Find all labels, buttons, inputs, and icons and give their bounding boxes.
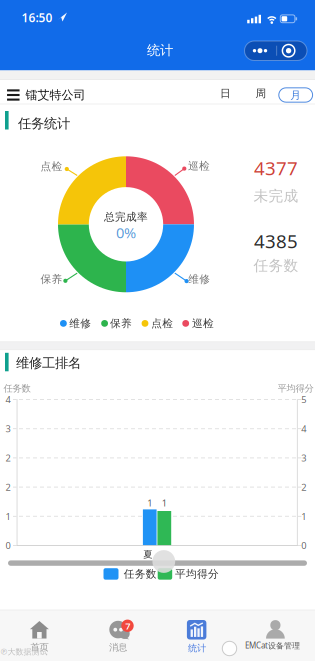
staticText: 任务数 — [124, 567, 157, 580]
button[interactable]: 日 — [213, 84, 237, 102]
staticText: ℗大数据测试 — [0, 646, 47, 657]
staticText: 点检 — [40, 160, 62, 173]
staticText: 总完成率 — [104, 210, 148, 223]
staticText: 3 — [301, 452, 306, 464]
staticText: 巡检 — [192, 317, 214, 330]
staticText: 维修 — [188, 273, 210, 286]
staticText: 1 — [162, 497, 167, 509]
staticText: 7 — [125, 620, 130, 632]
staticText: 16:50 — [21, 9, 52, 25]
button[interactable]: 月 — [278, 87, 313, 103]
staticText: 0% — [116, 223, 136, 242]
staticText: 维修工排名 — [16, 355, 81, 371]
staticText: EMCat设备管理 — [245, 640, 300, 651]
button[interactable]: 首页 — [4, 615, 74, 659]
button[interactable]: Close — [280, 41, 304, 60]
staticText: 4 — [301, 422, 306, 435]
staticText: 平均得分 — [277, 383, 313, 394]
staticText: 日 — [220, 87, 231, 100]
staticText: 首页 — [30, 641, 48, 653]
button[interactable]: 统计 — [162, 615, 232, 659]
button[interactable]: More — [245, 41, 276, 60]
staticText: 3 — [5, 422, 10, 435]
staticText: 月 — [290, 89, 301, 102]
staticText: 巡检 — [188, 159, 210, 172]
staticText: 夏 — [143, 549, 152, 560]
staticText: 统计 — [147, 42, 173, 58]
staticText: 1 — [301, 510, 306, 522]
staticText: 周 — [255, 87, 266, 100]
staticText: 4377 — [254, 156, 298, 180]
staticText: 统计 — [188, 642, 206, 654]
staticText: 保养 — [40, 273, 62, 286]
staticText: 4385 — [254, 229, 298, 253]
staticText: 1 — [5, 510, 10, 522]
button[interactable]: Profile — [241, 615, 311, 659]
staticText — [274, 642, 278, 654]
staticText: 2 — [5, 481, 10, 493]
button[interactable]: Company selector — [7, 88, 85, 102]
button[interactable]: Zoom slider — [152, 550, 175, 573]
staticText: 维修 — [69, 317, 91, 330]
staticText: 任务统计 — [18, 115, 70, 132]
staticText: 0 — [301, 539, 306, 552]
staticText: 0 — [5, 539, 10, 552]
staticText: 点检 — [151, 317, 173, 330]
staticText: 镭艾特公司 — [25, 88, 85, 102]
staticText: 5 — [301, 393, 306, 406]
staticText: 任务数 — [3, 383, 30, 394]
staticText: 2 — [301, 481, 306, 493]
staticText: 消息 — [109, 642, 127, 653]
staticText: 1 — [147, 497, 152, 509]
staticText: 2 — [5, 452, 10, 464]
staticText: 4 — [5, 393, 10, 406]
staticText: 任务数 — [253, 256, 298, 274]
staticText: 保养 — [110, 317, 132, 330]
button[interactable]: 周 — [249, 84, 273, 102]
staticText: 未完成 — [253, 187, 298, 205]
button[interactable]: 7 — [83, 615, 153, 659]
staticText: 平均得分 — [175, 567, 219, 580]
